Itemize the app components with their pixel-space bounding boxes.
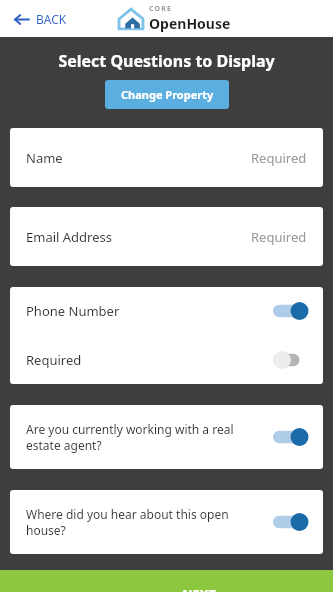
button[interactable]: Toggle on (273, 427, 307, 447)
button[interactable]: Email Address (10, 207, 323, 266)
button[interactable]: BACK (10, 7, 71, 31)
staticText: Name (26, 149, 63, 167)
button[interactable]: Where did you hear about this open house… (10, 490, 323, 554)
button[interactable]: Toggle on (273, 301, 307, 321)
button[interactable]: Phone Number (26, 287, 307, 335)
staticText: Select Questions to Display (0, 50, 333, 72)
staticText: NEXT (182, 585, 217, 592)
staticText: Email Address (26, 228, 112, 246)
button[interactable]: Required (26, 335, 307, 384)
staticText: BACK (36, 11, 67, 27)
button[interactable]: Name (10, 128, 323, 187)
button[interactable]: Toggle on (273, 512, 307, 532)
button[interactable]: Change Property (105, 80, 229, 109)
staticText: Required (251, 228, 307, 246)
staticText: CORE (149, 4, 173, 14)
staticText: Required (251, 149, 307, 167)
button[interactable]: NEXT (0, 570, 333, 592)
staticText: Are you currently working with a real es… (26, 421, 261, 453)
button[interactable]: Toggle off (273, 350, 307, 370)
staticText: Where did you hear about this open house… (26, 506, 261, 538)
staticText: Phone Number (26, 302, 120, 320)
staticText: Required (26, 351, 82, 369)
button[interactable]: Are you currently working with a real es… (10, 405, 323, 469)
staticText: OpenHouse (149, 14, 231, 33)
staticText: Change Property (121, 87, 214, 102)
